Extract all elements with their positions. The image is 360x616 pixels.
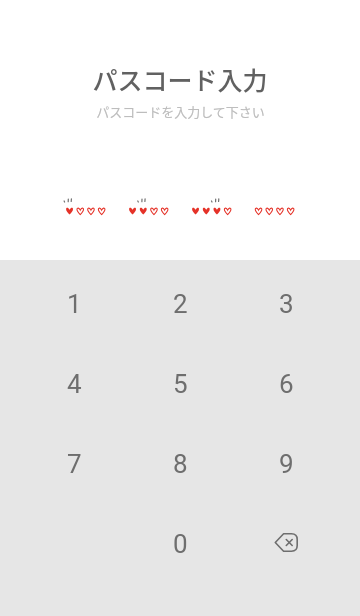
staticText: 5 — [173, 369, 188, 399]
button[interactable]: 5 — [127, 344, 233, 424]
staticText: 2 — [173, 289, 188, 319]
staticText: 8 — [173, 449, 188, 479]
button[interactable]: 6 — [233, 344, 339, 424]
button[interactable]: 1 — [21, 264, 127, 344]
staticText: 6 — [279, 369, 294, 399]
staticText: 4 — [67, 369, 82, 399]
button[interactable]: 4 — [21, 344, 127, 424]
button[interactable]: 2 — [127, 264, 233, 344]
staticText: 9 — [279, 449, 294, 479]
staticText: 1 — [67, 289, 82, 319]
button[interactable]: 9 — [233, 424, 339, 504]
button[interactable]: 0 — [127, 504, 233, 584]
button[interactable]: Delete — [233, 504, 339, 584]
staticText: パスコード入力 — [92, 61, 268, 97]
staticText: 3 — [279, 289, 294, 319]
staticText: 7 — [67, 449, 82, 479]
staticText: 0 — [173, 529, 188, 559]
button[interactable]: 8 — [127, 424, 233, 504]
staticText: パスコードを入力して下さい — [96, 102, 265, 121]
button[interactable]: 3 — [233, 264, 339, 344]
button[interactable]: 7 — [21, 424, 127, 504]
